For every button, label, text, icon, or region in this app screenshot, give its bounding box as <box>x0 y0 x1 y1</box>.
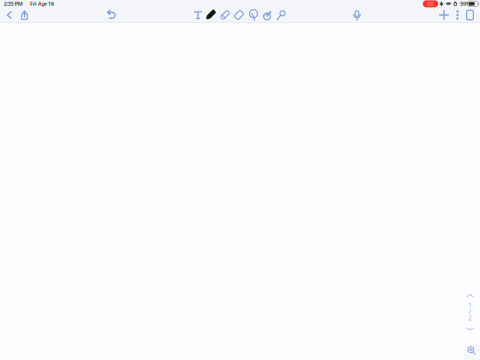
staticText: 08 <box>427 0 433 7</box>
button[interactable]: Add page <box>435 5 453 25</box>
button[interactable]: Next page <box>463 324 477 334</box>
button[interactable]: Eraser <box>230 5 248 25</box>
button[interactable]: Record audio <box>348 5 366 25</box>
button[interactable]: Zoom <box>464 344 480 360</box>
button[interactable]: Shapes <box>258 5 276 25</box>
button[interactable]: Share <box>15 5 33 25</box>
staticText: / <box>468 307 471 316</box>
staticText: Fri Apr 16 <box>30 0 54 7</box>
button[interactable]: Back <box>0 5 18 25</box>
button[interactable]: More <box>448 5 466 25</box>
button[interactable]: Highlighter <box>216 5 234 25</box>
button[interactable]: Lasso <box>244 5 262 25</box>
staticText: 2 <box>468 314 472 322</box>
button[interactable]: Pen <box>201 5 219 25</box>
button[interactable]: Previous page <box>463 290 477 300</box>
button[interactable]: Text <box>189 5 207 25</box>
staticText: 2:35 PM <box>4 0 23 7</box>
staticText: 59% <box>460 0 471 7</box>
button[interactable]: Page thumbnails <box>461 5 479 25</box>
staticText: 1 <box>468 301 472 309</box>
button[interactable]: Pointer <box>272 5 290 25</box>
button[interactable]: Undo <box>102 5 120 25</box>
